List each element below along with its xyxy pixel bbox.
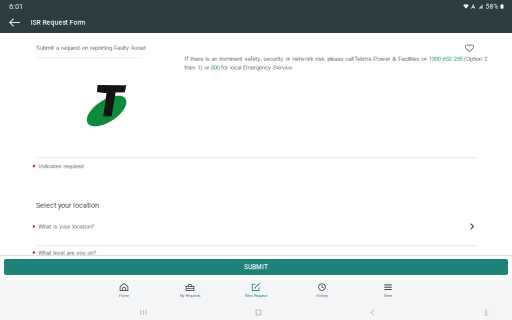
button[interactable]: History — [289, 280, 355, 301]
button[interactable]: Back — [370, 309, 374, 316]
staticText: for local Emergency Service — [221, 64, 292, 71]
button[interactable]: Back — [4, 13, 24, 32]
staticText: 000 — [211, 64, 220, 71]
staticText: More — [384, 293, 392, 298]
staticText: SUBMIT — [244, 263, 268, 271]
button[interactable]: Add to favourites — [462, 41, 477, 55]
staticText: If there is an imminent safety, security… — [184, 55, 427, 62]
staticText: My Requests — [179, 293, 200, 298]
staticText: 1300 652 235 — [429, 55, 463, 62]
staticText: then 1) or — [184, 64, 209, 71]
staticText: What is your location? — [38, 223, 94, 230]
staticText: New Request — [245, 293, 267, 298]
button[interactable]: What is your location? — [0, 221, 512, 246]
staticText: 58% — [485, 3, 498, 10]
button[interactable]: My Requests — [157, 280, 223, 301]
button[interactable]: Accessibility menu — [483, 309, 489, 316]
staticText: ISR Request Form — [30, 19, 85, 26]
button[interactable]: New Request — [223, 280, 289, 301]
staticText: Home — [119, 293, 129, 298]
button[interactable]: 000 — [211, 64, 220, 71]
staticText: What level are you on? — [38, 249, 96, 256]
staticText: Indicates required — [38, 162, 83, 170]
staticText: 6:01 — [9, 2, 23, 11]
staticText: History — [316, 293, 328, 298]
button[interactable]: Recent apps — [140, 309, 147, 315]
staticText: Submit a request on reporting Faulty Ass… — [36, 44, 146, 51]
staticText: (Option 2 — [464, 55, 487, 62]
button[interactable]: SUBMIT — [4, 259, 508, 275]
staticText: Select your location — [36, 201, 99, 209]
button[interactable]: More — [355, 280, 421, 301]
button[interactable]: 1300 652 235 — [429, 55, 463, 62]
button[interactable]: Home — [91, 280, 157, 301]
button[interactable]: Home — [255, 309, 261, 315]
